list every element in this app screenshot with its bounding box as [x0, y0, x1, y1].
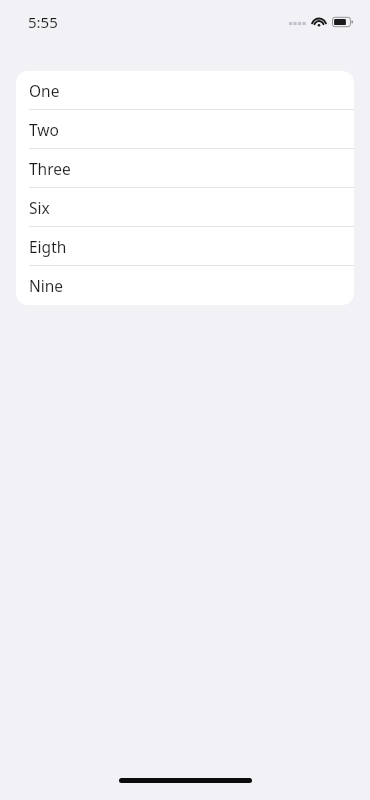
- staticText: Three: [29, 158, 71, 179]
- staticText: One: [29, 80, 60, 101]
- staticText: 5:55: [28, 12, 58, 32]
- staticText: Two: [29, 119, 59, 140]
- button[interactable]: Three: [16, 149, 354, 188]
- staticText: Eigth: [29, 236, 67, 257]
- button[interactable]: One: [16, 71, 354, 110]
- staticText: Nine: [29, 275, 64, 296]
- button[interactable]: Six: [16, 188, 354, 227]
- button[interactable]: Nine: [16, 266, 354, 305]
- button[interactable]: Two: [16, 110, 354, 149]
- staticText: Six: [29, 197, 50, 218]
- button[interactable]: Eigth: [16, 227, 354, 266]
